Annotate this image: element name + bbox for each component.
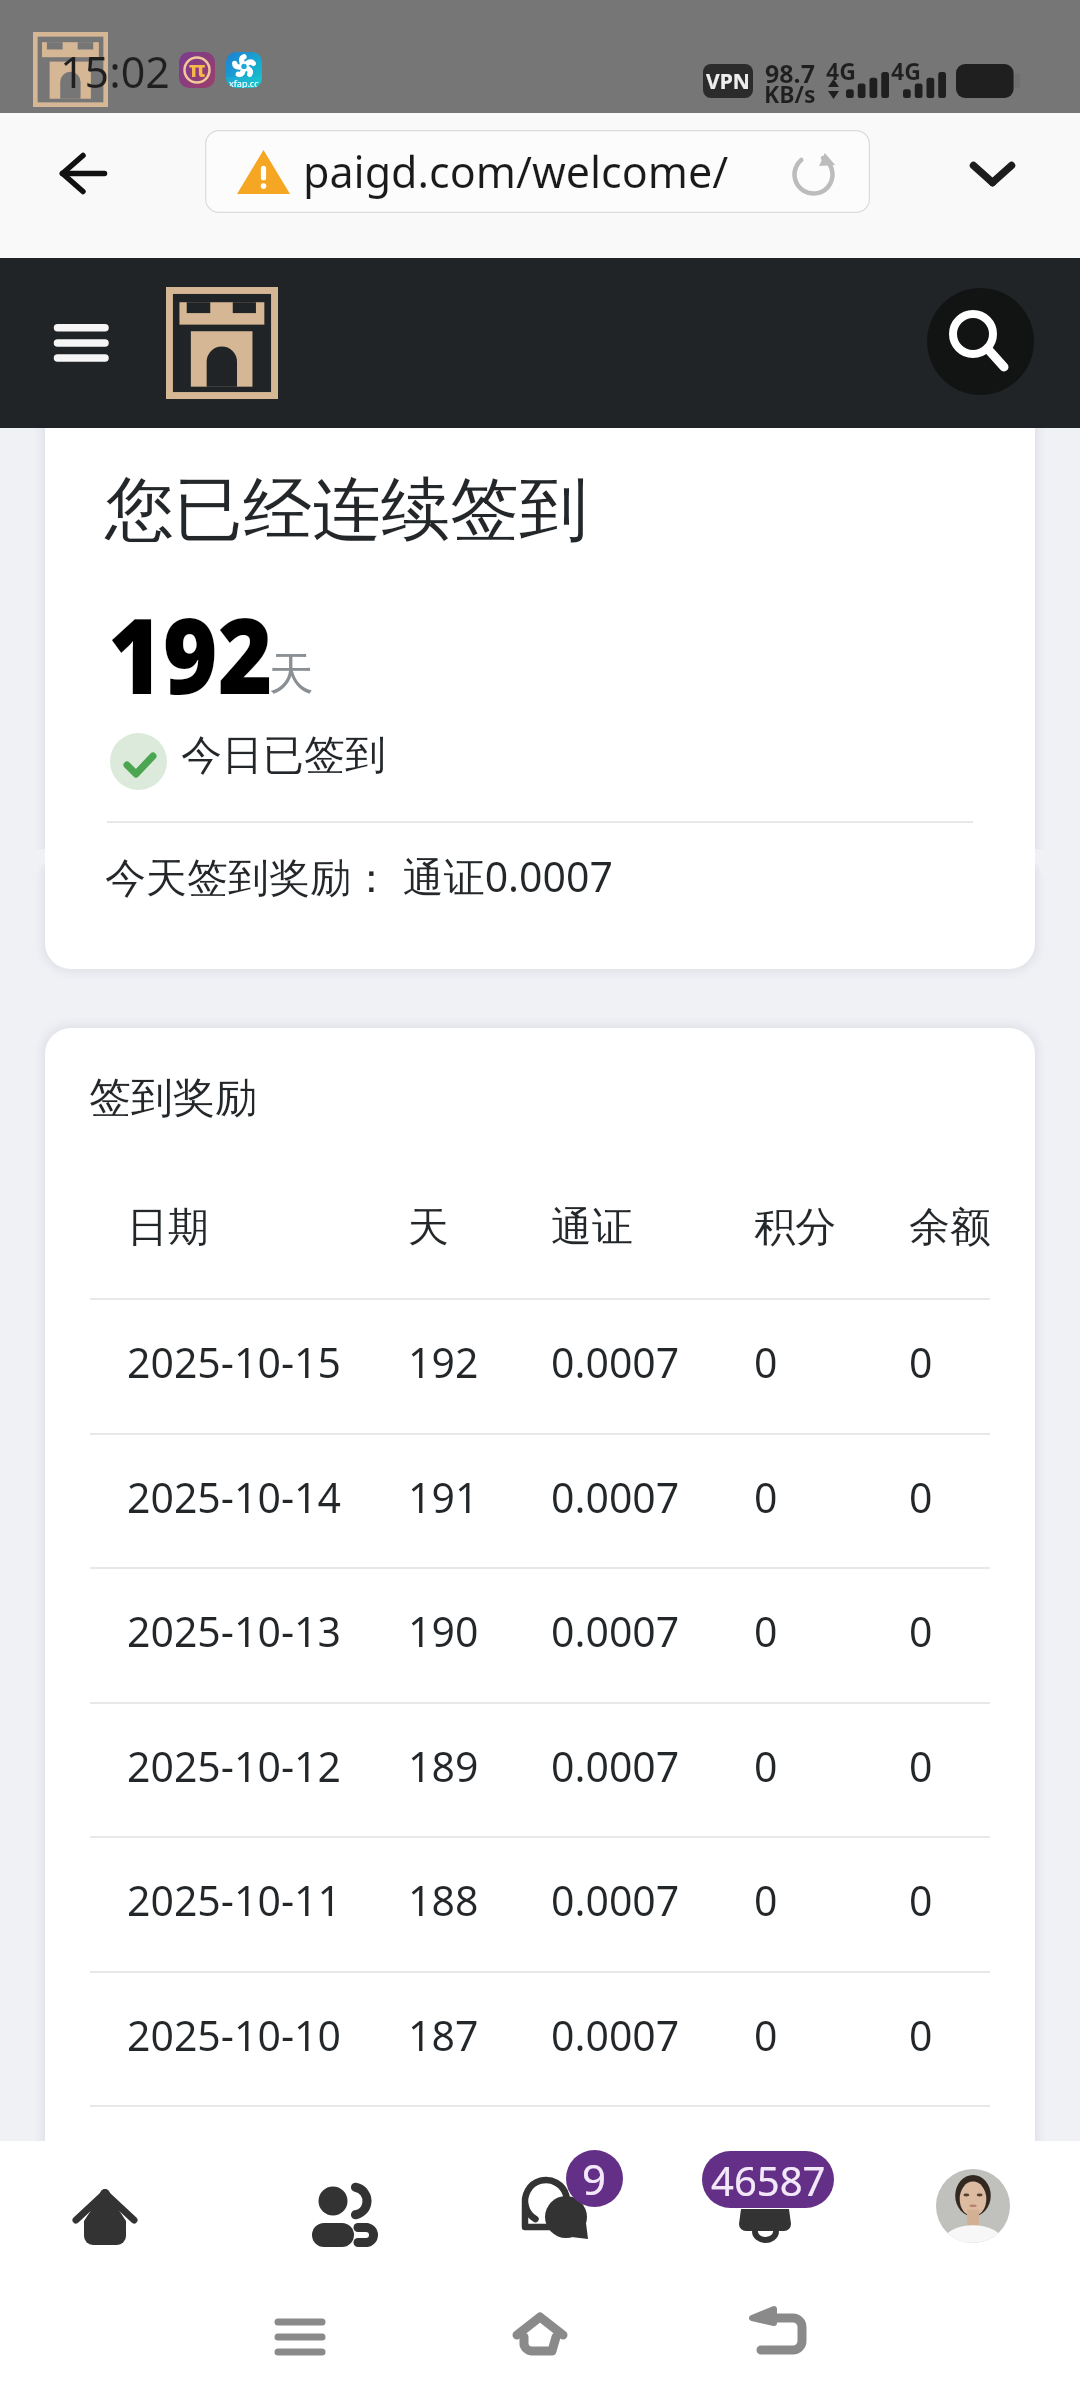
staticText: 0.0007 — [551, 1872, 680, 1928]
staticText: 191 — [408, 1469, 479, 1525]
button[interactable]: Search — [927, 288, 1034, 395]
staticText: VPN — [706, 67, 750, 96]
staticText: 9 — [582, 2150, 607, 2207]
button[interactable]: Home — [480, 2285, 600, 2390]
staticText: 0 — [754, 1469, 778, 1525]
staticText: 2025-10-15 — [127, 1334, 342, 1390]
staticText: 0 — [754, 1738, 778, 1794]
button[interactable]: Menu — [44, 310, 118, 376]
staticText: KB/s — [764, 78, 816, 109]
button[interactable]: Back — [720, 2285, 840, 2390]
staticText: 今天签到奖励： 通证0.0007 — [105, 848, 613, 904]
staticText: 2025-10-10 — [127, 2007, 342, 2063]
button[interactable]: Notifications — [690, 2141, 860, 2251]
staticText: 192 — [108, 583, 273, 725]
staticText: 0 — [909, 1603, 933, 1659]
staticText: 0 — [754, 1872, 778, 1928]
staticText: 189 — [408, 1738, 479, 1794]
staticText: 98.7 — [765, 56, 815, 90]
button[interactable]: Contacts — [268, 2149, 423, 2253]
staticText: 4G — [826, 55, 856, 86]
staticText: 2025-10-12 — [127, 1738, 342, 1794]
button[interactable]: Back — [40, 119, 126, 221]
staticText: π — [189, 53, 206, 83]
staticText: 今日已签到 — [181, 730, 386, 782]
staticText: 2025-10-11 — [127, 1872, 342, 1928]
staticText: 余额 — [909, 1202, 991, 1254]
button[interactable]: Profile — [920, 2153, 1025, 2258]
staticText: 0.0007 — [551, 2007, 680, 2063]
staticText: 签到奖励 — [89, 1072, 257, 1125]
staticText: xfap.cc — [229, 77, 259, 88]
button[interactable]: Messages — [500, 2141, 650, 2251]
staticText: 您已经连续签到 — [105, 467, 588, 554]
staticText: 46587 — [711, 2153, 826, 2207]
staticText: 0 — [909, 1334, 933, 1390]
staticText: 积分 — [754, 1202, 836, 1254]
staticText: 0 — [754, 1603, 778, 1659]
staticText: 天 — [408, 1202, 449, 1254]
staticText: 0.0007 — [551, 1334, 680, 1390]
staticText: 15:02 — [60, 42, 170, 101]
staticText: 4G — [891, 55, 921, 86]
button[interactable]: Expand — [946, 129, 1040, 229]
staticText: 190 — [408, 1603, 479, 1659]
staticText: 192 — [408, 1334, 479, 1390]
button[interactable]: paigd.com/welcome/ — [205, 130, 870, 213]
staticText: 0 — [754, 1334, 778, 1390]
staticText: 2025-10-13 — [127, 1603, 342, 1659]
staticText: 0 — [909, 2007, 933, 2063]
staticText: 0.0007 — [551, 1469, 680, 1525]
staticText: 0 — [754, 2007, 778, 2063]
button[interactable]: Home — [30, 2149, 180, 2253]
staticText: 2025-10-14 — [127, 1469, 342, 1525]
staticText: 通证 — [551, 1202, 633, 1254]
staticText: 日期 — [127, 1202, 209, 1254]
staticText: 0 — [909, 1872, 933, 1928]
staticText: 0.0007 — [551, 1603, 680, 1659]
staticText: 0 — [909, 1738, 933, 1794]
button[interactable]: Recent apps — [240, 2285, 360, 2390]
staticText: 0.0007 — [551, 1738, 680, 1794]
staticText: paigd.com/welcome/ — [303, 142, 729, 201]
staticText: 天 — [269, 646, 314, 703]
staticText: 187 — [408, 2007, 479, 2063]
staticText: 0 — [909, 1469, 933, 1525]
staticText: 188 — [408, 1872, 479, 1928]
